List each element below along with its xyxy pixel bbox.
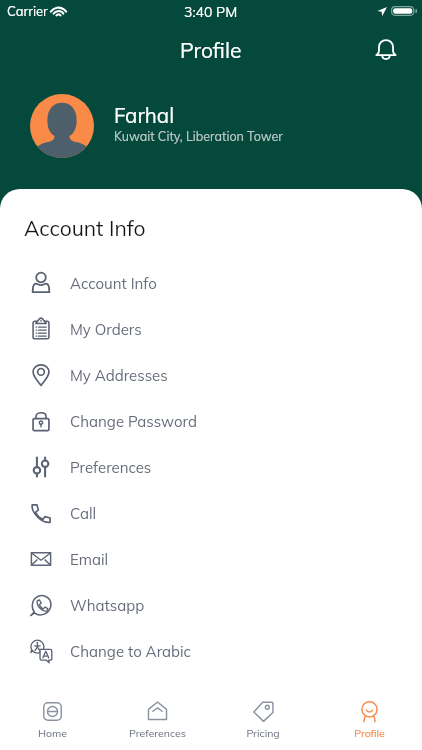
- button[interactable]: Email: [0, 536, 422, 582]
- staticText: Carrier: [7, 3, 48, 19]
- button[interactable]: Account Info: [0, 260, 422, 306]
- staticText: Profile: [180, 37, 242, 63]
- staticText: Farhal: [114, 102, 175, 128]
- button[interactable]: Whatsapp: [0, 582, 422, 628]
- button[interactable]: Notifications: [370, 34, 402, 66]
- button[interactable]: Change Password: [0, 398, 422, 444]
- staticText: Profile: [354, 726, 385, 739]
- button[interactable]: My Orders: [0, 306, 422, 352]
- button[interactable]: Preferences: [0, 444, 422, 490]
- staticText: My Orders: [70, 320, 142, 339]
- staticText: Account Info: [24, 215, 146, 241]
- staticText: Home: [38, 726, 67, 739]
- button[interactable]: Call: [0, 490, 422, 536]
- staticText: Pricing: [246, 726, 280, 739]
- button[interactable]: Preferences: [105, 689, 210, 750]
- staticText: Change Password: [70, 412, 197, 431]
- staticText: My Addresses: [70, 366, 168, 385]
- button[interactable]: Home: [0, 689, 105, 750]
- staticText: Call: [70, 504, 97, 523]
- button[interactable]: My Addresses: [0, 352, 422, 398]
- button[interactable]: Profile: [316, 689, 422, 750]
- staticText: Change to Arabic: [70, 642, 192, 661]
- staticText: Kuwait City, Liberation Tower: [114, 128, 283, 144]
- button[interactable]: Change to Arabic: [0, 628, 422, 674]
- staticText: Whatsapp: [70, 596, 145, 615]
- button[interactable]: Pricing: [210, 689, 316, 750]
- staticText: 3:40 PM: [184, 3, 238, 21]
- staticText: Preferences: [129, 726, 186, 739]
- staticText: Account Info: [70, 274, 157, 293]
- staticText: Email: [70, 550, 109, 569]
- staticText: Preferences: [70, 458, 152, 477]
